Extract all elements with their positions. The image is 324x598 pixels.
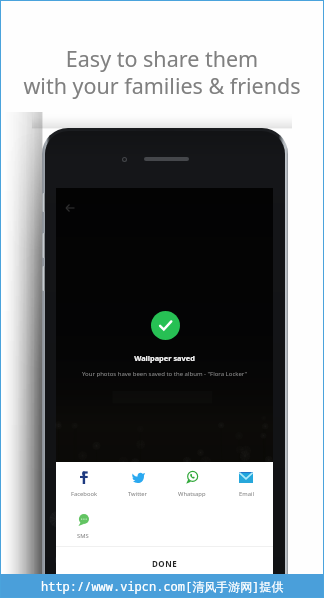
staticText: SMS [77, 532, 89, 540]
button[interactable]: Twitter [111, 471, 165, 498]
staticText: Easy to share them with your families & … [0, 44, 324, 100]
button[interactable]: SMS [56, 513, 110, 540]
staticText: Twitter [128, 490, 148, 498]
staticText: Wallpaper saved [56, 353, 273, 363]
staticText: Email [239, 490, 254, 498]
button[interactable]: Back [61, 199, 79, 217]
staticText: Your photos have been saved to the album… [56, 370, 273, 378]
button[interactable]: Whatsapp [165, 471, 219, 498]
button[interactable]: Email [219, 471, 273, 498]
staticText: Facebook [71, 490, 97, 498]
button[interactable]: DONE [56, 547, 273, 575]
staticText: http://www.vipcn.com[清风手游网]提供 [41, 578, 284, 594]
staticText: Whatsapp [178, 490, 206, 498]
button[interactable]: Facebook [56, 471, 111, 498]
staticText: DONE [152, 558, 178, 569]
